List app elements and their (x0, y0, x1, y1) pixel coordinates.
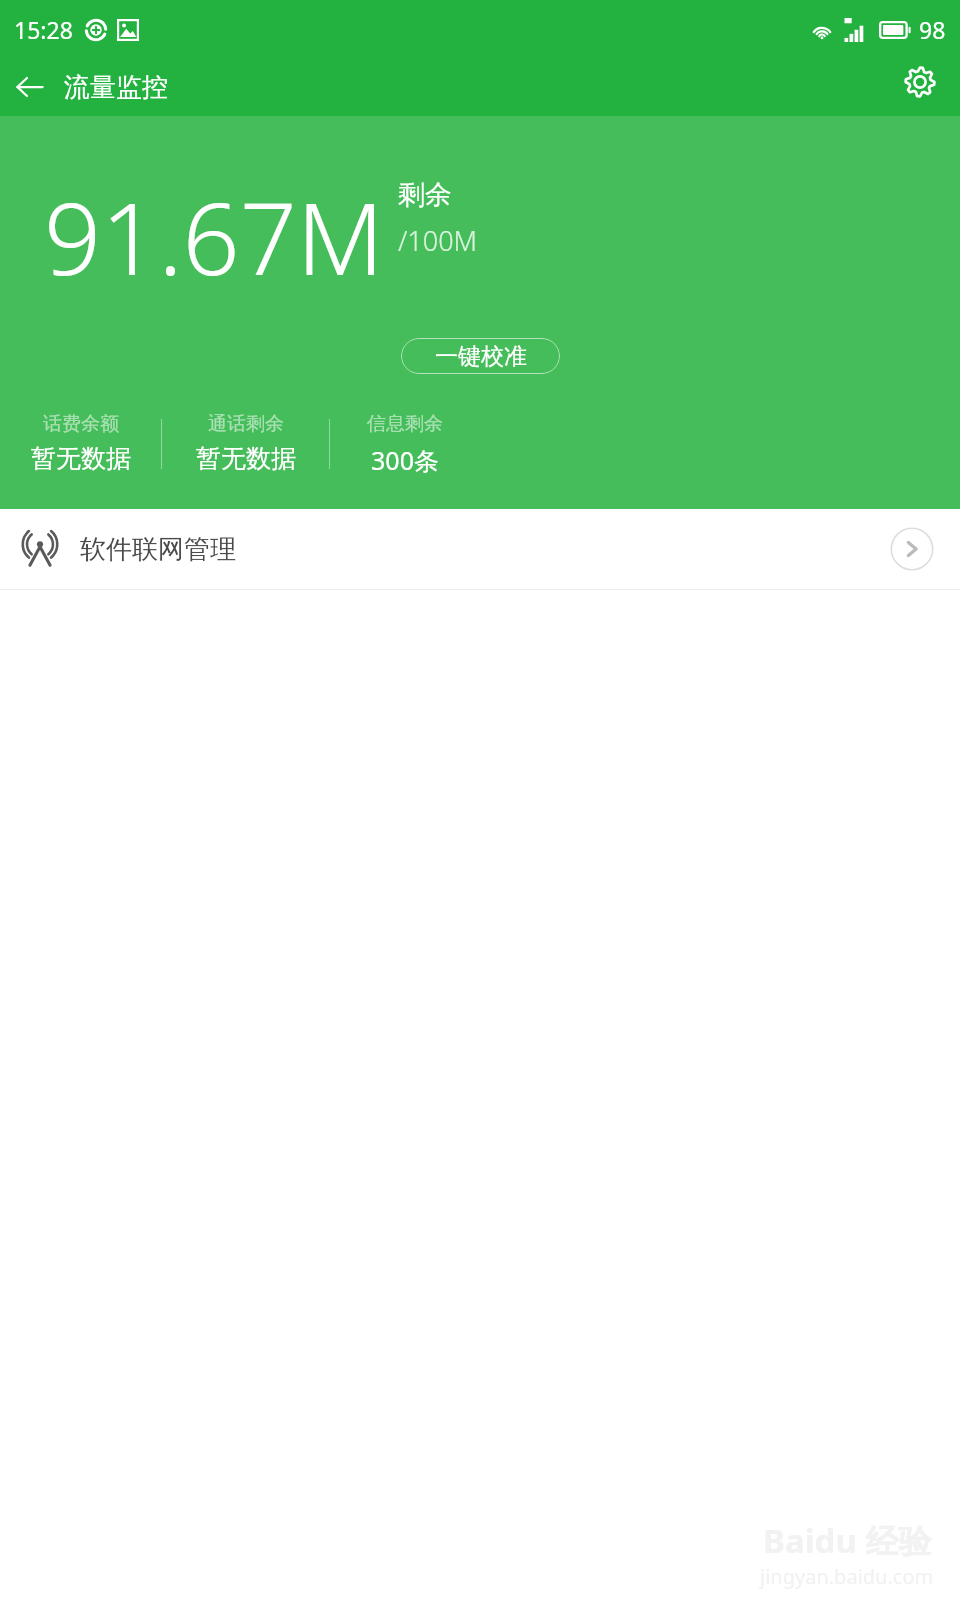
button[interactable]: 信息剩余 (330, 412, 480, 477)
button[interactable]: 软件联网管理 (0, 509, 960, 589)
staticText: 98 (919, 14, 946, 45)
staticText: 通话剩余 (208, 412, 284, 436)
staticText: 话费余额 (43, 412, 119, 436)
staticText: 15:28 (14, 14, 73, 45)
button[interactable]: 一键校准 (401, 338, 560, 374)
staticText: /100M (398, 222, 478, 259)
staticText: 信息剩余 (367, 412, 443, 436)
staticText: Baidu 经验 (763, 1518, 932, 1563)
staticText: 暂无数据 (31, 443, 131, 474)
staticText: 一键校准 (435, 342, 527, 371)
staticText: 剩余 (398, 178, 452, 212)
button[interactable]: 话费余额 (0, 412, 161, 474)
staticText: jingyan.baidu.com (760, 1563, 934, 1590)
staticText: 软件联网管理 (80, 533, 236, 566)
staticText: 300条 (371, 443, 439, 477)
button[interactable]: Back (4, 61, 56, 113)
button[interactable]: 通话剩余 (162, 412, 329, 474)
staticText: 91.67M (44, 168, 384, 304)
button[interactable]: Settings (894, 56, 946, 108)
staticText: 暂无数据 (196, 443, 296, 474)
staticText: 流量监控 (64, 71, 168, 104)
